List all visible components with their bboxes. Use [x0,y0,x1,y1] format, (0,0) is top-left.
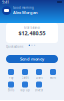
button[interactable]: Bills [4,81,18,92]
button[interactable]: Top up [18,81,32,92]
button[interactable]: Cards [18,69,32,79]
staticText: More [49,76,56,79]
button[interactable]: Loans [32,69,46,79]
staticText: Alex Morgan [13,10,38,15]
button[interactable]: Send money [6,55,58,63]
staticText: Bills [8,88,14,92]
button[interactable]: Pay [4,69,18,79]
staticText: 9:41 [2,0,9,5]
staticText: Good morning [13,6,34,9]
button[interactable]: Invest [32,81,46,92]
staticText: Cards [21,76,28,79]
staticText: Total balance [23,26,40,29]
staticText: Send money [20,56,44,62]
staticText: Invest [35,88,43,92]
staticText: $12,480.55 [18,29,45,37]
staticText: Quick actions [6,45,23,48]
staticText: Top up [20,88,30,92]
button[interactable]: More [46,69,60,79]
staticText: Loans [35,76,42,79]
staticText: Pay [9,76,13,79]
